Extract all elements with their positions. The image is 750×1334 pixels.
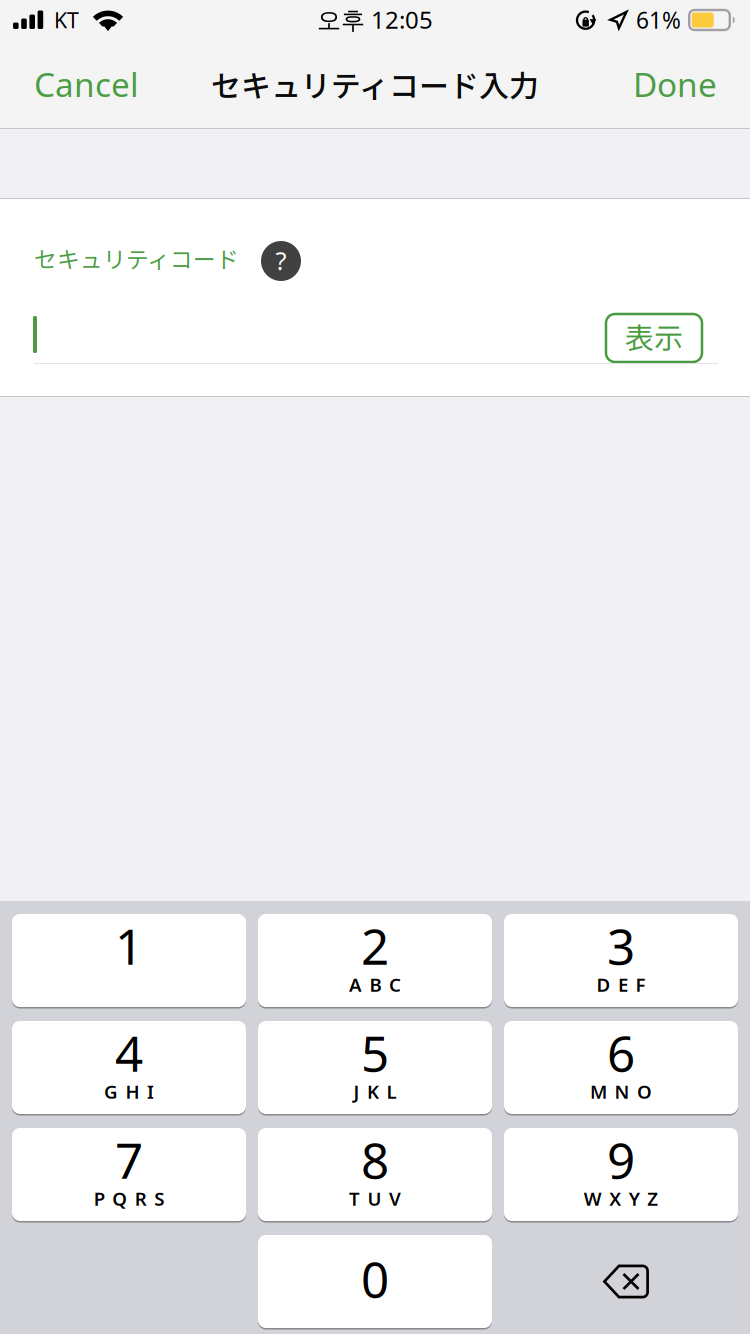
staticText: ? [275, 244, 286, 277]
staticText: 0 [361, 1246, 389, 1311]
staticText: 4 [115, 1020, 143, 1085]
staticText: J [353, 1079, 359, 1104]
staticText: C [389, 972, 401, 997]
staticText: O [637, 1079, 652, 1104]
staticText: T [349, 1186, 360, 1211]
button[interactable]: 8 [258, 1128, 492, 1221]
staticText: X [609, 1186, 621, 1211]
staticText: 1 [115, 913, 143, 978]
button[interactable]: 5 [258, 1021, 492, 1114]
button[interactable]: Delete [504, 1235, 738, 1328]
staticText: I [147, 1079, 154, 1104]
staticText: セキュリティコード [34, 242, 239, 274]
staticText: R [135, 1186, 147, 1211]
staticText: V [389, 1186, 401, 1211]
staticText: セキュリティコード入力 [211, 62, 539, 106]
staticText: 表示 [625, 315, 683, 357]
staticText: M [590, 1079, 607, 1104]
staticText: Cancel [34, 62, 139, 106]
staticText: KT [54, 6, 79, 34]
staticText: 오후 12:05 [317, 4, 433, 35]
staticText: F [635, 972, 645, 997]
button[interactable]: 6 [504, 1021, 738, 1114]
staticText: B [369, 972, 381, 997]
button[interactable]: 0 [258, 1235, 492, 1328]
staticText: Done [633, 62, 717, 106]
staticText: A [349, 972, 362, 997]
staticText: W [584, 1186, 602, 1211]
button[interactable]: Done [616, 40, 734, 128]
staticText: 3 [607, 913, 635, 978]
staticText: 61% [636, 5, 681, 35]
button[interactable]: 1 [12, 914, 246, 1007]
staticText: D [596, 972, 610, 997]
button[interactable]: 2 [258, 914, 492, 1007]
staticText: H [125, 1079, 139, 1104]
staticText: S [154, 1186, 164, 1211]
button[interactable]: 4 [12, 1021, 246, 1114]
staticText: 5 [361, 1020, 389, 1085]
staticText: U [367, 1186, 381, 1211]
staticText: 9 [607, 1127, 635, 1192]
button[interactable]: Cancel [17, 40, 156, 128]
staticText: L [386, 1079, 396, 1104]
staticText: K [367, 1079, 379, 1104]
staticText: 6 [607, 1020, 635, 1085]
button[interactable]: 9 [504, 1128, 738, 1221]
staticText: 2 [361, 913, 389, 978]
staticText: 7 [115, 1127, 143, 1192]
staticText: Z [647, 1186, 658, 1211]
staticText: P [94, 1186, 105, 1211]
button[interactable]: 7 [12, 1128, 246, 1221]
button[interactable]: Help [261, 241, 301, 281]
staticText: Q [112, 1186, 127, 1211]
button[interactable]: 表示 [606, 314, 702, 362]
staticText: Y [629, 1186, 640, 1211]
staticText: N [614, 1079, 629, 1104]
staticText: E [618, 972, 628, 997]
staticText: G [104, 1079, 118, 1104]
button[interactable]: 3 [504, 914, 738, 1007]
staticText: 8 [361, 1127, 389, 1192]
